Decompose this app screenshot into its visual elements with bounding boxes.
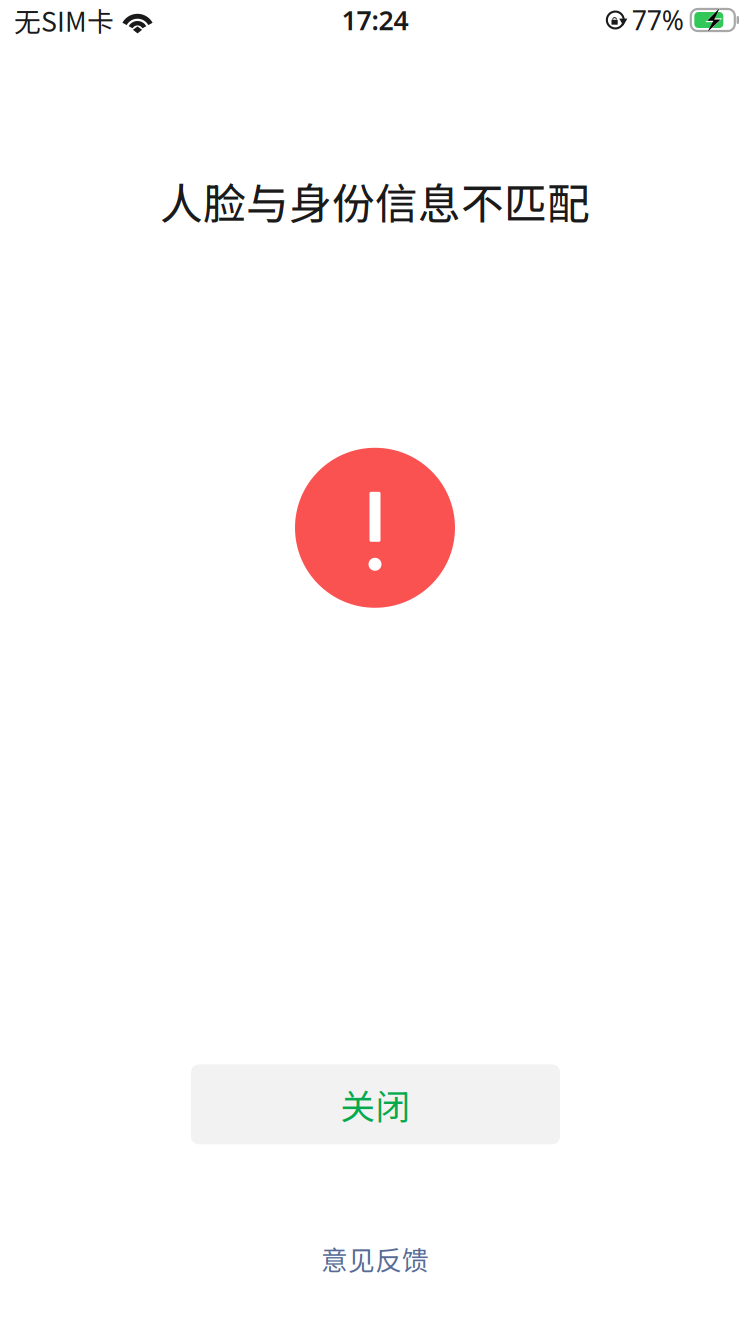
staticText: 77% [632, 2, 684, 38]
staticText: 无SIM卡 [14, 1, 114, 39]
staticText: 17:24 [341, 2, 408, 38]
staticText: 关闭 [340, 1079, 410, 1129]
staticText: 人脸与身份信息不匹配 [160, 170, 590, 232]
staticText: 意见反馈 [321, 1239, 429, 1278]
button[interactable]: 意见反馈 [297, 1229, 453, 1288]
button[interactable]: 关闭 [191, 1064, 560, 1144]
